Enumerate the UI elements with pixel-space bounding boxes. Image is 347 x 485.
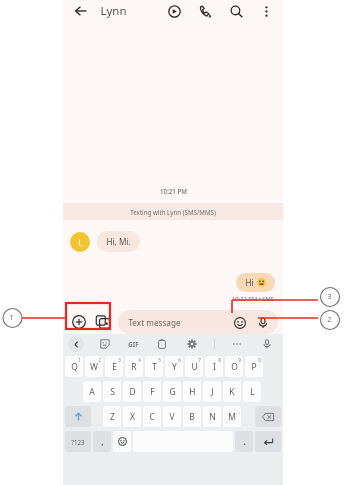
button[interactable]: Search: [226, 1, 246, 21]
button[interactable]: Video call: [164, 1, 184, 21]
button[interactable]: More options: [256, 1, 276, 21]
staticText: Texting with Lynn (SMS/MMS): [130, 208, 216, 216]
staticText: 4: [138, 357, 141, 363]
button[interactable]: Add attachment: [68, 311, 90, 333]
staticText: 7: [198, 357, 201, 363]
button[interactable]: Y: [165, 356, 183, 377]
button[interactable]: Hi, Mi.: [97, 231, 140, 252]
button[interactable]: N: [203, 406, 221, 427]
staticText: .: [243, 436, 246, 447]
button[interactable]: O: [225, 356, 243, 377]
button[interactable]: Emoji keyboard: [113, 431, 131, 452]
button[interactable]: F: [143, 381, 161, 402]
button[interactable]: G: [163, 381, 181, 402]
button[interactable]: J: [203, 381, 221, 402]
staticText: 1: [9, 312, 14, 322]
staticText: 5: [158, 357, 161, 363]
button[interactable]: Gallery: [92, 311, 114, 333]
button[interactable]: C: [143, 406, 161, 427]
button[interactable]: Call: [195, 1, 215, 21]
button[interactable]: Emoji: [231, 314, 248, 331]
staticText: F: [150, 386, 155, 398]
staticText: V: [169, 411, 175, 423]
button[interactable]: Q: [65, 356, 83, 377]
staticText: O: [231, 361, 238, 373]
staticText: Hi, Mi.: [106, 236, 131, 247]
staticText: ,: [101, 436, 104, 447]
staticText: 2: [98, 357, 101, 363]
button[interactable]: X: [123, 406, 141, 427]
staticText: 6: [178, 357, 181, 363]
staticText: Text message: [128, 317, 181, 328]
staticText: D: [129, 386, 136, 398]
staticText: 0: [258, 357, 261, 363]
staticText: 10:21 PM: [160, 187, 187, 195]
staticText: L: [78, 236, 83, 248]
staticText: 9: [238, 357, 241, 363]
button[interactable]: Z: [103, 406, 121, 427]
button[interactable]: Hi: [236, 273, 275, 292]
button[interactable]: T: [145, 356, 163, 377]
button[interactable]: More: [229, 336, 245, 352]
staticText: 10:22 PM • SMS: [232, 295, 274, 303]
button[interactable]: B: [183, 406, 201, 427]
staticText: M: [228, 411, 236, 423]
button[interactable]: S: [103, 381, 121, 402]
button[interactable]: P: [245, 356, 263, 377]
button[interactable]: Text message: [118, 310, 278, 334]
staticText: L: [250, 386, 255, 398]
staticText: 2: [327, 314, 332, 324]
staticText: I: [213, 361, 216, 373]
staticText: Y: [172, 361, 177, 373]
button[interactable]: Expand toolbar: [68, 336, 84, 352]
staticText: 3: [327, 291, 332, 301]
staticText: A: [89, 386, 95, 398]
button[interactable]: U: [185, 356, 203, 377]
button[interactable]: Enter: [255, 431, 281, 452]
staticText: Z: [110, 411, 115, 423]
button[interactable]: Keyboard settings: [184, 336, 200, 352]
staticText: X: [130, 411, 135, 423]
staticText: W: [90, 361, 98, 373]
button[interactable]: A: [83, 381, 101, 402]
staticText: ?123: [71, 438, 85, 446]
staticText: Lynn: [100, 3, 127, 19]
button[interactable]: Comma: [93, 431, 111, 452]
staticText: 3: [118, 357, 121, 363]
button[interactable]: M: [223, 406, 241, 427]
button[interactable]: Numbers and symbols: [65, 431, 91, 452]
staticText: Q: [71, 361, 78, 373]
staticText: R: [131, 361, 137, 373]
button[interactable]: Voice typing: [259, 336, 275, 352]
staticText: B: [189, 411, 195, 423]
staticText: N: [209, 411, 216, 423]
button[interactable]: V: [163, 406, 181, 427]
button[interactable]: D: [123, 381, 141, 402]
button[interactable]: Shift: [65, 406, 91, 427]
staticText: C: [149, 411, 155, 423]
button[interactable]: R: [125, 356, 143, 377]
staticText: T: [152, 361, 157, 373]
button[interactable]: I: [205, 356, 223, 377]
button[interactable]: H: [183, 381, 201, 402]
button[interactable]: W: [85, 356, 103, 377]
button[interactable]: Voice input: [254, 314, 271, 331]
staticText: GIF: [128, 340, 139, 348]
button[interactable]: GIF: [126, 338, 141, 350]
staticText: H: [189, 386, 196, 398]
staticText: Hi: [245, 277, 254, 288]
button[interactable]: E: [105, 356, 123, 377]
button[interactable]: Back: [70, 0, 92, 22]
button[interactable]: Period: [235, 431, 253, 452]
button[interactable]: Stickers: [97, 336, 113, 352]
staticText: K: [229, 386, 235, 398]
button[interactable]: L: [243, 381, 261, 402]
button[interactable]: K: [223, 381, 241, 402]
staticText: G: [169, 386, 176, 398]
staticText: 8: [218, 357, 221, 363]
button[interactable]: Backspace: [255, 406, 281, 427]
staticText: E: [112, 361, 117, 373]
button[interactable]: Clipboard: [154, 336, 170, 352]
staticText: U: [191, 361, 198, 373]
